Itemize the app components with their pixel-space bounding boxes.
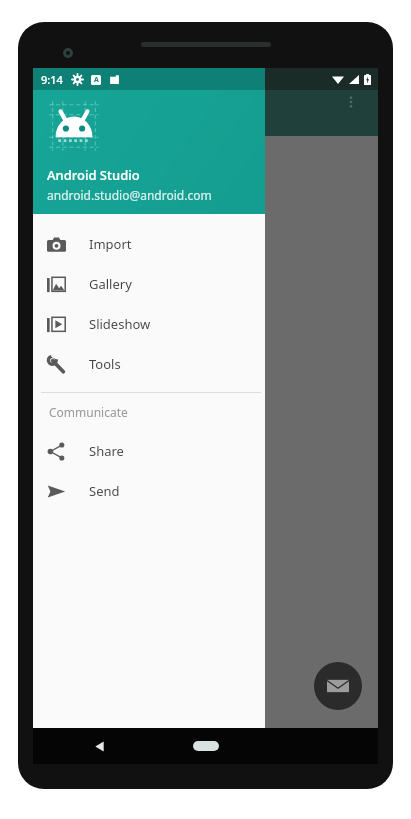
staticText: Send <box>89 482 120 500</box>
button[interactable]: Android Studio <box>33 68 265 214</box>
staticText: Tools <box>89 355 121 373</box>
button[interactable]: Import <box>33 224 265 264</box>
button[interactable]: Slideshow <box>33 304 265 344</box>
staticText: Share <box>89 442 124 460</box>
button[interactable]: Tools <box>33 344 265 384</box>
staticText: 9:14 <box>41 72 63 87</box>
staticText: Import <box>89 235 132 253</box>
staticText: Communicate <box>49 404 128 420</box>
staticText: Android Studio <box>47 166 140 184</box>
button[interactable]: Back <box>85 732 113 760</box>
button[interactable]: Home <box>189 733 223 759</box>
button[interactable]: Share <box>33 431 265 471</box>
button[interactable]: Gallery <box>33 264 265 304</box>
button[interactable]: Send <box>33 471 265 511</box>
staticText: A <box>94 75 99 85</box>
button[interactable]: More options <box>334 85 368 119</box>
button[interactable]: Send email <box>314 662 362 710</box>
staticText: Slideshow <box>89 315 151 333</box>
staticText: Gallery <box>89 275 132 293</box>
staticText: android.studio@android.com <box>47 187 212 203</box>
